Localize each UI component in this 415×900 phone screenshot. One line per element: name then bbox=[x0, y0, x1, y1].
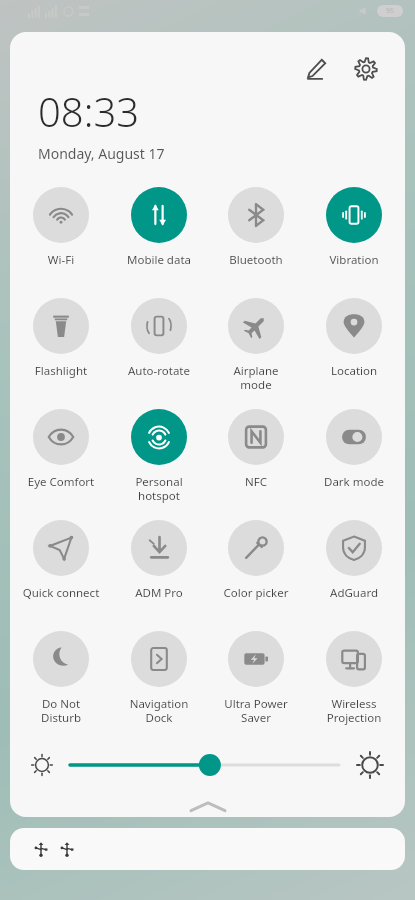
button[interactable]: Edit bbox=[295, 48, 337, 90]
staticText: Location bbox=[308, 363, 400, 379]
staticText: Wireless Projection bbox=[308, 696, 400, 726]
staticText: Airplane mode bbox=[210, 363, 302, 393]
button[interactable]: Navigation Dock bbox=[113, 627, 205, 726]
staticText: Personal hotspot bbox=[113, 474, 205, 504]
button[interactable]: NFC bbox=[210, 405, 302, 490]
staticText: Mobile data bbox=[113, 252, 205, 268]
button[interactable]: ADM Pro bbox=[113, 516, 205, 601]
staticText: Quick connect bbox=[15, 585, 107, 601]
button[interactable]: Flashlight bbox=[15, 294, 107, 379]
button[interactable]: Auto-rotate bbox=[113, 294, 205, 379]
button[interactable]: Vibration bbox=[308, 183, 400, 268]
staticText: Vibration bbox=[308, 252, 400, 268]
staticText: Navigation Dock bbox=[113, 696, 205, 726]
button[interactable]: AdGuard bbox=[308, 516, 400, 601]
staticText: 08:33 bbox=[38, 84, 140, 138]
staticText: NFC bbox=[210, 474, 302, 490]
button[interactable]: Bluetooth bbox=[210, 183, 302, 268]
button[interactable]: Personal hotspot bbox=[113, 405, 205, 504]
staticText: Bluetooth bbox=[210, 252, 302, 268]
button[interactable]: Wireless Projection bbox=[308, 627, 400, 726]
staticText: ADM Pro bbox=[113, 585, 205, 601]
button[interactable]: Mobile data bbox=[113, 183, 205, 268]
button[interactable]: Location bbox=[308, 294, 400, 379]
staticText: Wi-Fi bbox=[15, 252, 107, 268]
button[interactable]: Quick connect bbox=[15, 516, 107, 601]
button[interactable]: Wi-Fi bbox=[15, 183, 107, 268]
staticText: Auto-rotate bbox=[113, 363, 205, 379]
button[interactable]: Collapse panel bbox=[10, 796, 405, 817]
staticText: Eye Comfort bbox=[15, 474, 107, 490]
staticText: Dark mode bbox=[308, 474, 400, 490]
button[interactable]: Settings bbox=[345, 48, 387, 90]
staticText: Flashlight bbox=[15, 363, 107, 379]
button[interactable] bbox=[10, 828, 405, 870]
button[interactable]: Do Not Disturb bbox=[15, 627, 107, 726]
button[interactable]: Dark mode bbox=[308, 405, 400, 490]
staticText: Ultra Power Saver bbox=[210, 696, 302, 726]
staticText: Monday, August 17 bbox=[38, 144, 165, 163]
button[interactable] bbox=[70, 752, 339, 778]
button[interactable]: Eye Comfort bbox=[15, 405, 107, 490]
staticText: Color picker bbox=[210, 585, 302, 601]
button[interactable]: Ultra Power Saver bbox=[210, 627, 302, 726]
button[interactable]: Airplane mode bbox=[210, 294, 302, 393]
staticText: 95 bbox=[386, 6, 395, 16]
staticText: AdGuard bbox=[308, 585, 400, 601]
staticText: Do Not Disturb bbox=[15, 696, 107, 726]
button[interactable]: Color picker bbox=[210, 516, 302, 601]
